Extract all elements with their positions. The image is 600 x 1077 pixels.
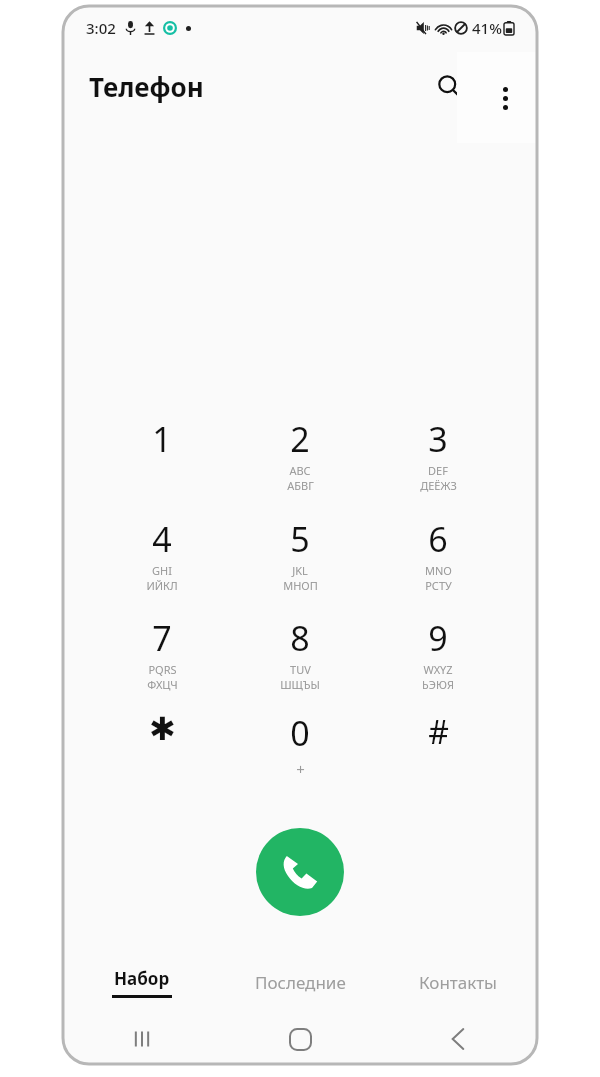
staticText: АБВГ [287, 478, 314, 493]
staticText: ✱ [149, 710, 176, 747]
button[interactable]: 2 [254, 416, 346, 508]
staticText: Последние [255, 971, 346, 994]
staticText: TUV [290, 662, 311, 677]
staticText: ЬЭЮЯ [422, 677, 454, 692]
staticText: 5 [290, 516, 310, 562]
staticText: 3 [428, 416, 448, 462]
staticText: 4 [152, 516, 172, 562]
staticText: 41% [472, 18, 502, 38]
button[interactable]: Search [427, 64, 471, 108]
staticText: MNO [425, 563, 452, 578]
staticText: 6 [428, 516, 448, 562]
button[interactable]: 9 [392, 615, 484, 707]
button[interactable]: 5 [254, 516, 346, 608]
staticText: 1 [152, 416, 172, 462]
staticText: ИЙКЛ [146, 578, 178, 593]
staticText: ABC [289, 463, 311, 478]
staticText: JKL [292, 563, 308, 578]
button[interactable]: Call [256, 828, 344, 916]
staticText: ДЕЁЖЗ [420, 478, 457, 493]
button[interactable]: # [392, 710, 484, 802]
staticText: МНОП [283, 578, 318, 593]
staticText: 0 [290, 710, 310, 756]
staticText: Телефон [89, 69, 204, 104]
staticText: Контакты [419, 971, 498, 994]
staticText: 8 [290, 615, 310, 661]
button[interactable]: 4 [116, 516, 208, 608]
staticText: ШЩЪЫ [280, 677, 320, 692]
button[interactable]: Последние [221, 954, 379, 1010]
button[interactable]: Recents [63, 1014, 221, 1064]
button[interactable]: Контакты [379, 954, 537, 1010]
button[interactable]: 1 [116, 416, 208, 508]
staticText: 9 [428, 615, 448, 661]
button[interactable]: 3 [392, 416, 484, 508]
button[interactable]: More options [483, 76, 527, 120]
staticText: # [428, 710, 449, 754]
staticText: DEF [428, 463, 448, 478]
staticText: Набор [114, 967, 170, 990]
button[interactable]: 7 [116, 615, 208, 707]
button[interactable]: 0 [254, 710, 346, 802]
button[interactable]: 8 [254, 615, 346, 707]
staticText: 7 [152, 615, 172, 661]
button[interactable]: Home [221, 1014, 379, 1064]
staticText: 2 [290, 416, 310, 462]
button[interactable]: ✱ [116, 710, 208, 802]
staticText: + [296, 759, 305, 779]
staticText: РСТУ [425, 578, 452, 593]
staticText: PQRS [148, 662, 177, 677]
staticText: WXYZ [423, 662, 453, 677]
staticText: 3:02 [86, 18, 116, 38]
staticText: ФХЦЧ [147, 677, 178, 692]
button[interactable]: Набор [63, 954, 221, 1010]
staticText: GHI [152, 563, 172, 578]
button[interactable]: 6 [392, 516, 484, 608]
button[interactable]: Back [379, 1014, 537, 1064]
